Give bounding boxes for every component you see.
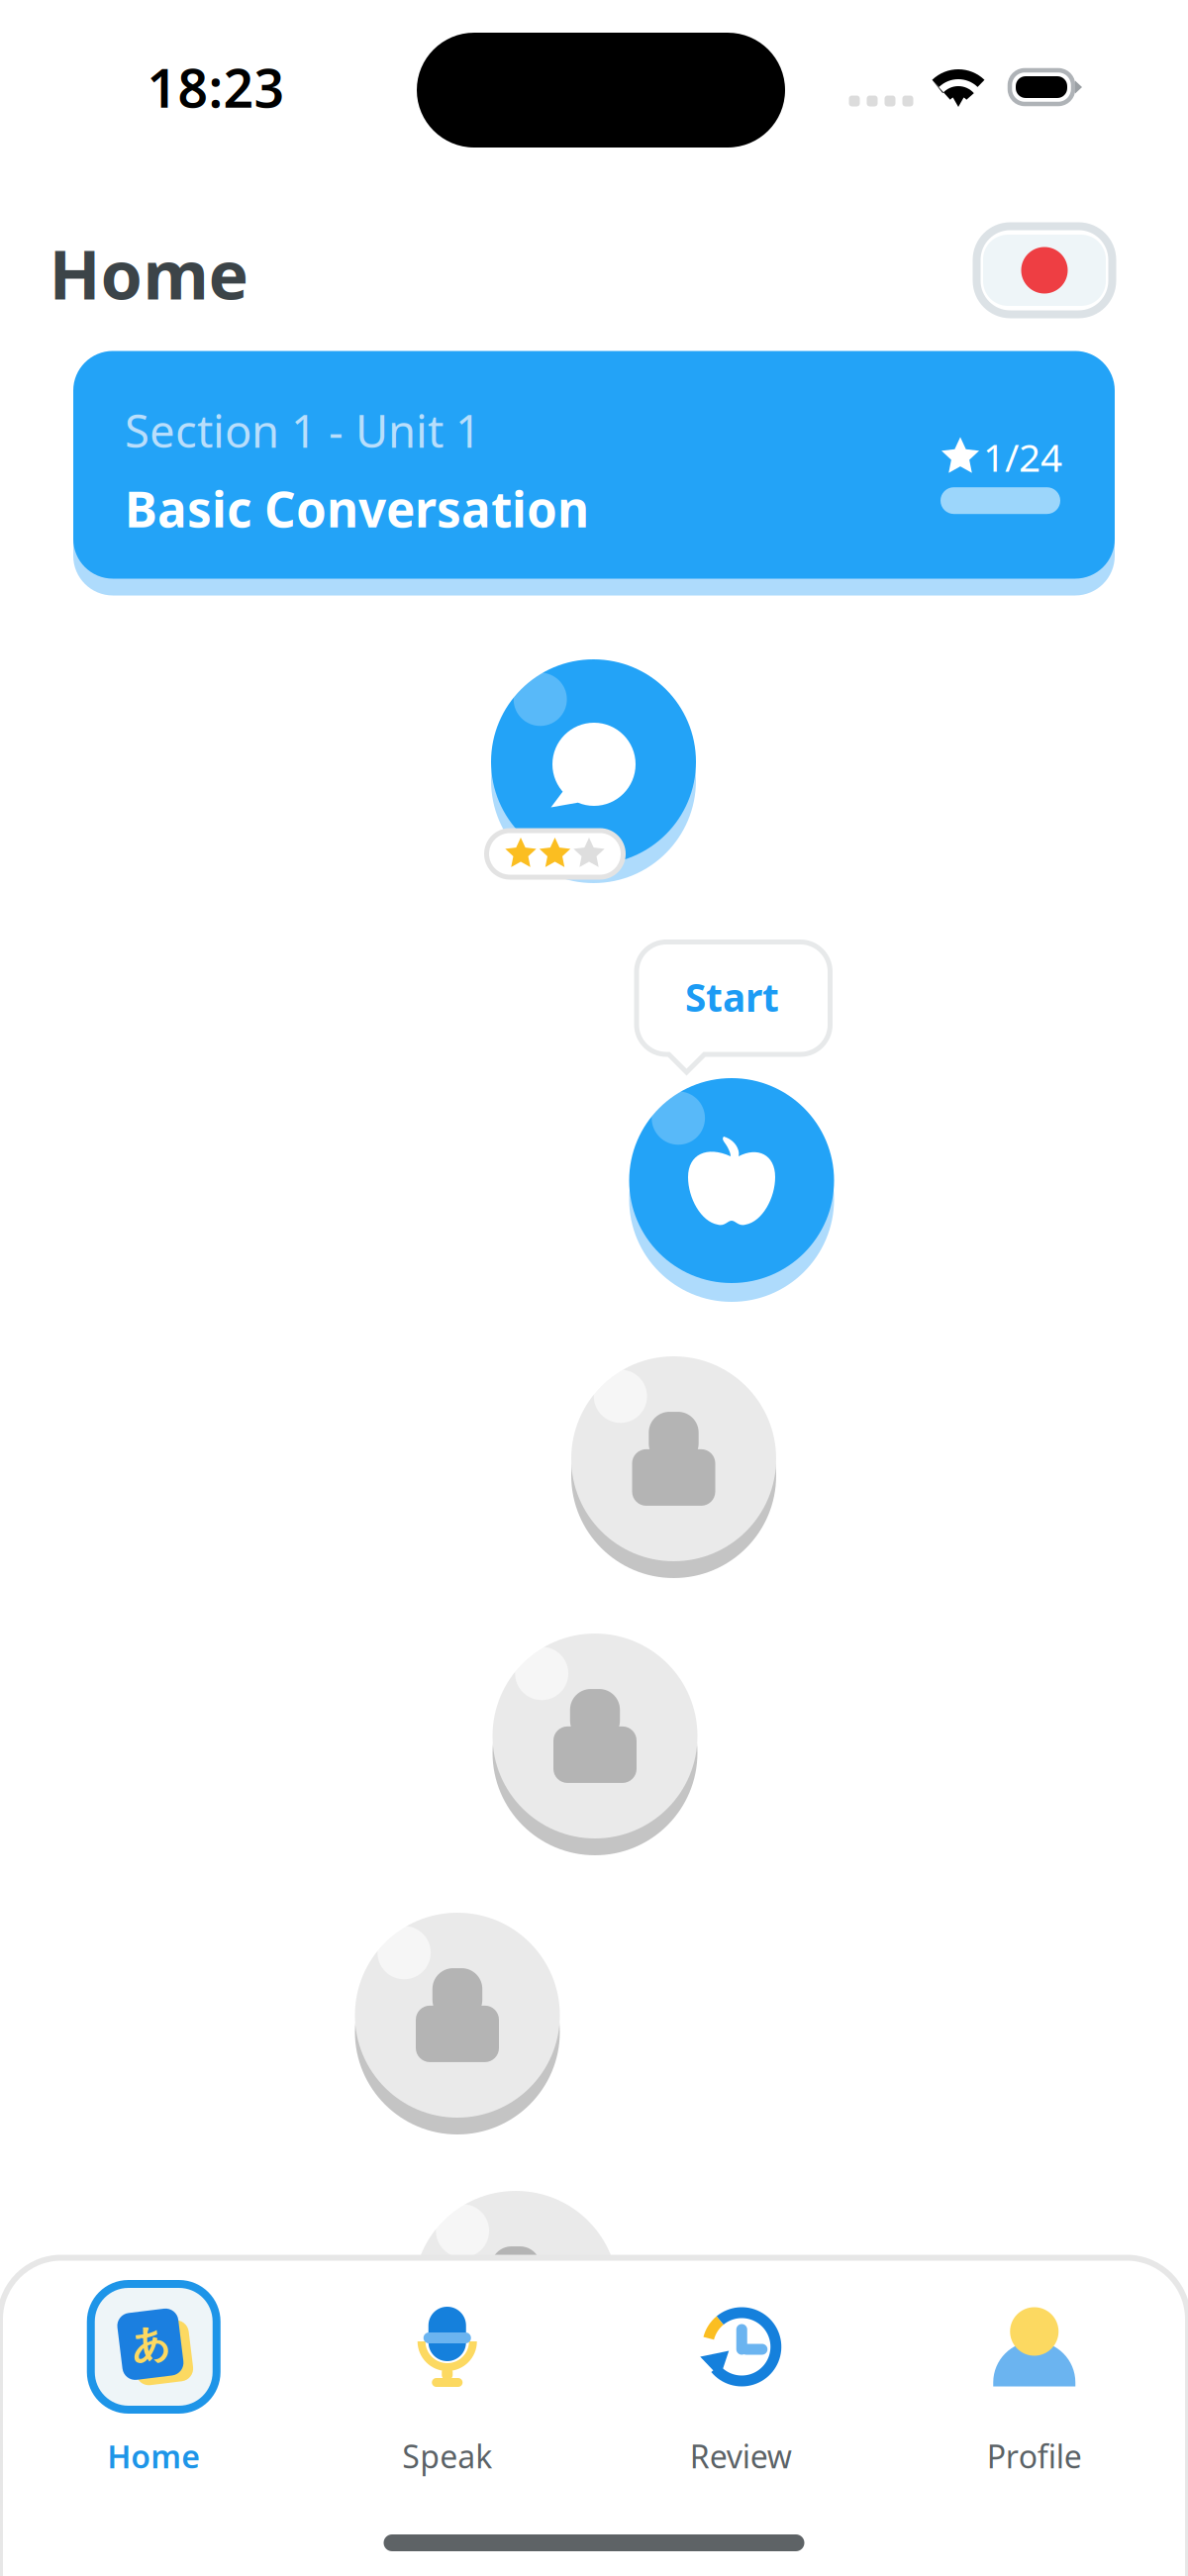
button[interactable]: Language: Japanese: [969, 219, 1120, 322]
button[interactable]: Section 1 - Unit 1: [73, 343, 1115, 587]
button[interactable]: Start lesson: [629, 1078, 834, 1302]
staticText: 1/24: [983, 431, 1062, 482]
staticText: Home: [49, 228, 249, 318]
staticText: Start: [685, 971, 779, 1022]
button[interactable]: Speak: [300, 2258, 594, 2576]
button[interactable]: Home: [7, 2258, 300, 2576]
button[interactable]: Locked lesson: [571, 1356, 776, 1578]
button[interactable]: Review: [594, 2258, 888, 2576]
staticText: 18:23: [147, 52, 285, 122]
button[interactable]: Locked lesson: [493, 1634, 697, 1855]
button[interactable]: Lesson 1, 2 of 3 stars: [487, 659, 700, 883]
staticText: Review: [690, 2435, 792, 2477]
button[interactable]: Locked lesson: [355, 1913, 560, 2134]
staticText: Section 1 - Unit 1: [125, 401, 481, 460]
staticText: Profile: [987, 2435, 1082, 2477]
staticText: Basic Conversation: [125, 476, 589, 541]
button[interactable]: Profile: [888, 2258, 1181, 2576]
staticText: あ: [131, 2320, 170, 2367]
staticText: Speak: [402, 2435, 492, 2477]
button[interactable]: Start: [634, 940, 830, 1072]
staticText: Home: [107, 2435, 200, 2477]
button[interactable]: Locked lesson: [413, 2191, 618, 2413]
